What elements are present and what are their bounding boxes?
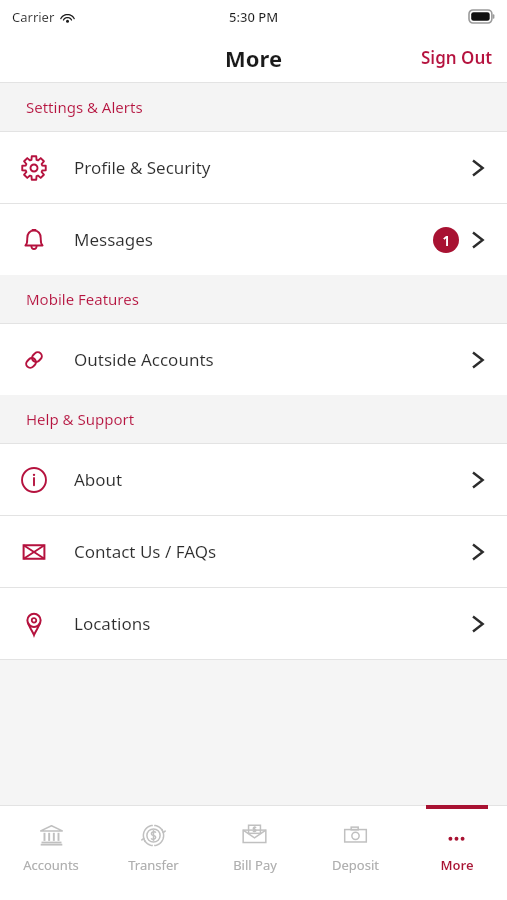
button[interactable]: Messages [0,204,507,275]
staticText: Outside Accounts [74,348,472,371]
button[interactable]: Accounts [0,805,102,878]
button[interactable]: Transfer [102,805,204,878]
button[interactable]: Deposit [305,805,406,878]
button[interactable]: More [406,805,507,878]
staticText: Accounts [23,856,79,874]
button[interactable]: Bill Pay [204,805,305,878]
staticText: Mobile Features [26,289,139,309]
staticText: About [74,468,472,491]
button[interactable]: About [0,444,507,515]
staticText: 5:30 PM [229,8,279,26]
button[interactable]: Profile & Security [0,132,507,203]
staticText: More [440,856,474,874]
button[interactable]: Locations [0,588,507,659]
staticText: Bill Pay [233,856,277,874]
staticText: More [225,43,283,73]
staticText: Contact Us / FAQs [74,540,472,563]
staticText: Transfer [128,856,179,874]
staticText: 1 [442,231,451,250]
staticText: Help & Support [26,409,135,429]
button[interactable]: Outside Accounts [0,324,507,395]
staticText: Profile & Security [74,156,472,179]
staticText: Carrier [12,8,55,26]
button[interactable]: Sign Out [407,36,507,79]
staticText: Settings & Alerts [26,97,143,117]
staticText: Deposit [332,856,379,874]
staticText: Locations [74,612,472,635]
staticText: Sign Out [421,46,493,69]
button[interactable]: Contact Us / FAQs [0,516,507,587]
staticText: Messages [74,228,433,251]
